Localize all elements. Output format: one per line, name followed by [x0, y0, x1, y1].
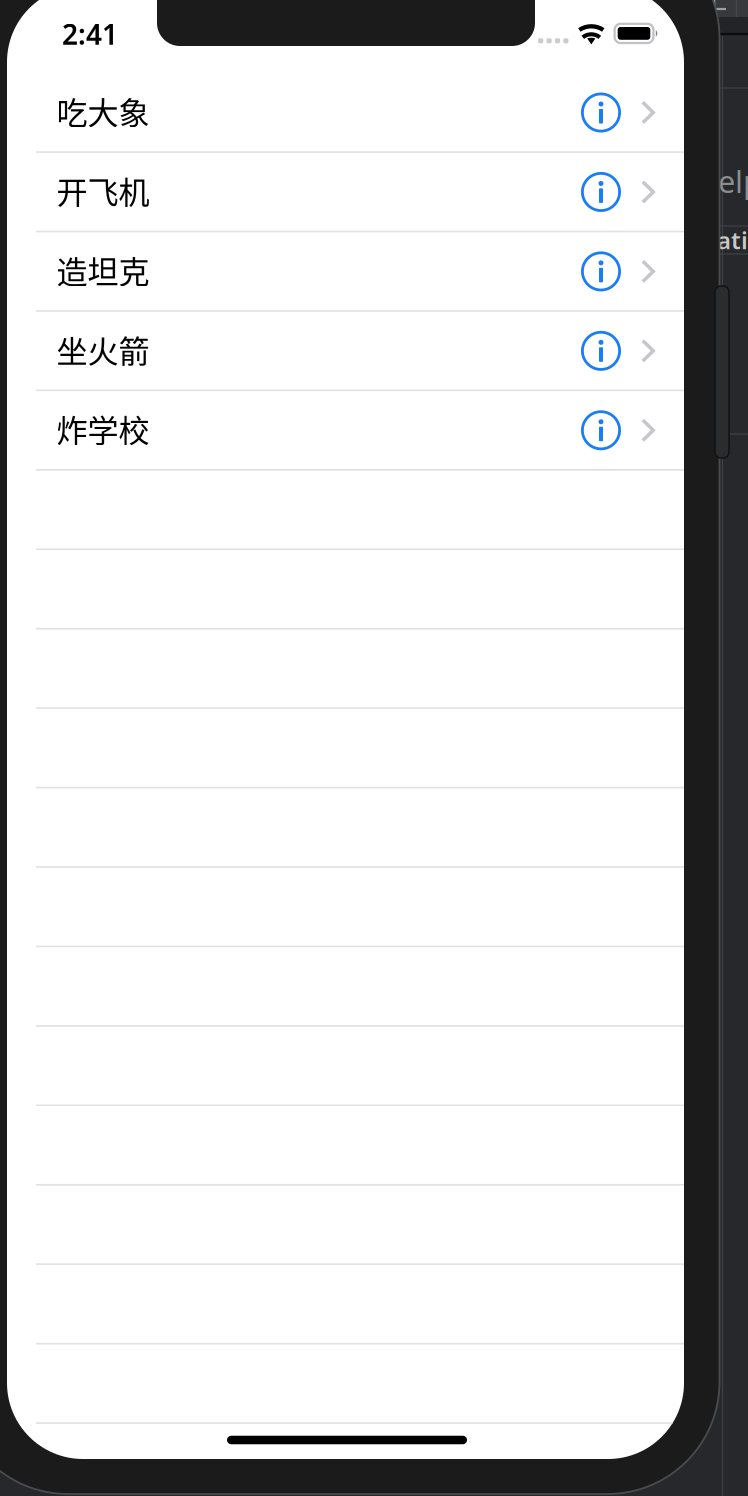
button[interactable]: More information about 造坦克 [581, 251, 621, 291]
button[interactable]: 开飞机 [36, 172, 684, 212]
staticText: atio [717, 224, 748, 256]
button[interactable]: More information about 炸学校 [581, 410, 621, 450]
button[interactable]: 造坦克 [36, 252, 684, 291]
staticText: 吃大象 [56, 88, 149, 133]
button[interactable]: 炸学校 [36, 411, 684, 450]
button[interactable]: More information about 开飞机 [581, 172, 621, 212]
staticText: 坐火箭 [56, 327, 149, 372]
staticText: 造坦克 [56, 247, 149, 292]
staticText: 炸学校 [56, 406, 149, 451]
staticText: 2:41 [62, 15, 118, 53]
staticText: elp [718, 161, 748, 201]
button[interactable]: 吃大象 [36, 93, 684, 132]
button[interactable]: 坐火箭 [36, 331, 684, 370]
button[interactable]: More information about 坐火箭 [581, 331, 621, 371]
button[interactable]: More information about 吃大象 [581, 92, 621, 132]
staticText: 开飞机 [56, 168, 149, 213]
